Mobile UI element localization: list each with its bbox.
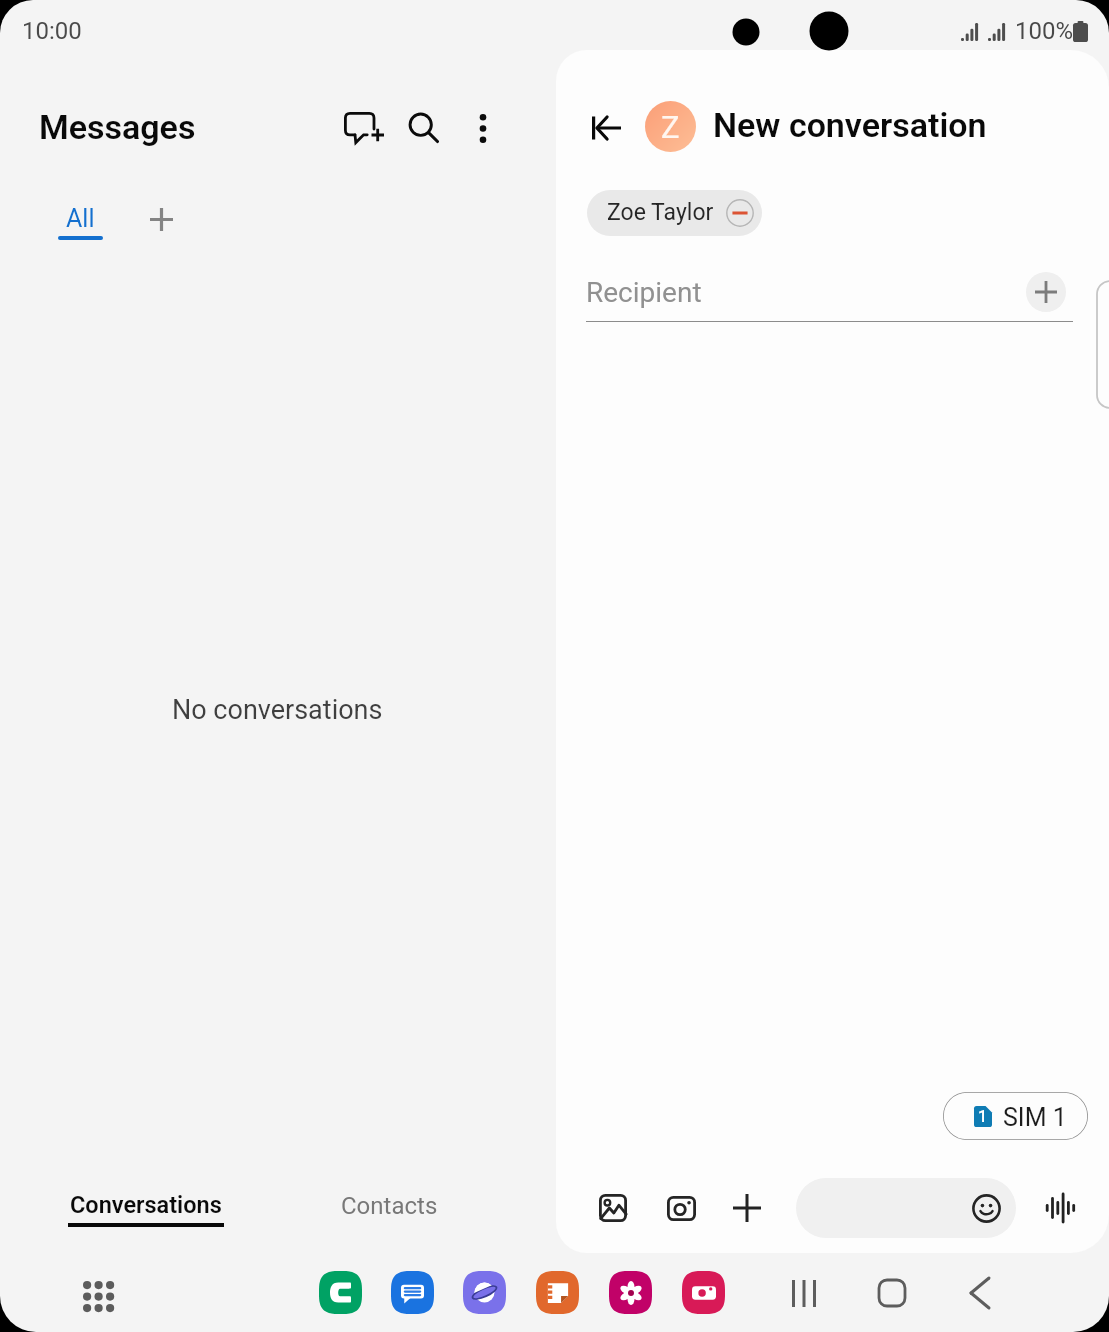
button[interactable]: All xyxy=(50,196,111,246)
button[interactable]: Collapse panel xyxy=(580,102,632,154)
button[interactable]: Contacts xyxy=(329,1188,447,1230)
button[interactable]: Internet xyxy=(463,1271,506,1314)
button[interactable]: Voice message xyxy=(1034,1182,1086,1234)
button[interactable]: Conversations xyxy=(60,1188,232,1234)
staticText: Recipient xyxy=(586,276,702,309)
button[interactable]: All apps xyxy=(71,1270,119,1318)
staticText: 10:00 xyxy=(22,17,82,45)
button[interactable]: Edge panel xyxy=(1097,281,1109,408)
button[interactable]: More options xyxy=(457,102,509,154)
button[interactable]: Gallery xyxy=(609,1271,652,1314)
staticText: No conversations xyxy=(172,694,383,726)
button[interactable]: 1 xyxy=(943,1092,1088,1140)
button[interactable]: Recents xyxy=(778,1267,830,1319)
button[interactable]: Attach xyxy=(721,1182,773,1234)
staticText: All xyxy=(66,204,95,233)
button[interactable]: Add category xyxy=(137,195,185,243)
button[interactable]: Zoe Taylor xyxy=(587,190,762,236)
button[interactable]: Gallery xyxy=(587,1182,639,1234)
staticText: Zoe Taylor xyxy=(607,199,714,226)
button[interactable]: Camera xyxy=(682,1271,725,1314)
staticText: SIM 1 xyxy=(1003,1103,1067,1132)
staticText: New conversation xyxy=(713,105,987,145)
button[interactable]: Back xyxy=(954,1267,1006,1319)
staticText: Conversations xyxy=(70,1191,222,1219)
button[interactable] xyxy=(796,1178,1016,1238)
button[interactable]: Camera xyxy=(655,1182,707,1234)
button[interactable]: Search xyxy=(398,102,450,154)
staticText: Contacts xyxy=(341,1192,438,1220)
staticText: Z xyxy=(661,109,680,145)
button[interactable]: Messages xyxy=(391,1271,434,1314)
button[interactable]: Phone xyxy=(319,1271,362,1314)
button[interactable]: Notes xyxy=(536,1271,579,1314)
staticText: 100% xyxy=(1015,17,1074,45)
button[interactable]: New conversation xyxy=(339,102,391,154)
button[interactable]: Home xyxy=(866,1267,918,1319)
staticText: 1 xyxy=(978,1107,988,1126)
staticText: Messages xyxy=(39,107,196,147)
button[interactable]: Add recipient xyxy=(1026,272,1066,312)
